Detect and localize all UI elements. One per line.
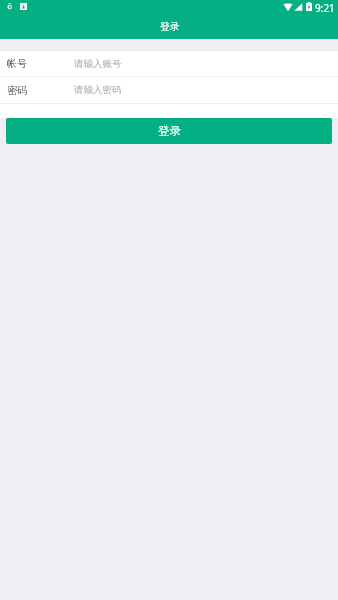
staticText: 9:21 bbox=[315, 1, 335, 15]
button[interactable]: 密码 bbox=[0, 77, 338, 103]
staticText: 帐号 bbox=[7, 57, 27, 70]
button[interactable]: 登录 bbox=[6, 118, 332, 144]
other: Wi-Fi bbox=[283, 3, 293, 11]
other: Notification bbox=[6, 3, 13, 10]
staticText: 密码 bbox=[7, 84, 27, 97]
staticText: 请输入密码 bbox=[74, 84, 122, 96]
other: Mobile signal bbox=[294, 3, 303, 11]
staticText: 请输入账号 bbox=[74, 58, 122, 70]
staticText: 登录 bbox=[158, 124, 181, 138]
staticText: 登录 bbox=[160, 20, 180, 33]
button[interactable]: 帐号 bbox=[0, 51, 338, 76]
other: Battery bbox=[306, 2, 312, 11]
other: Notification bbox=[20, 3, 27, 10]
